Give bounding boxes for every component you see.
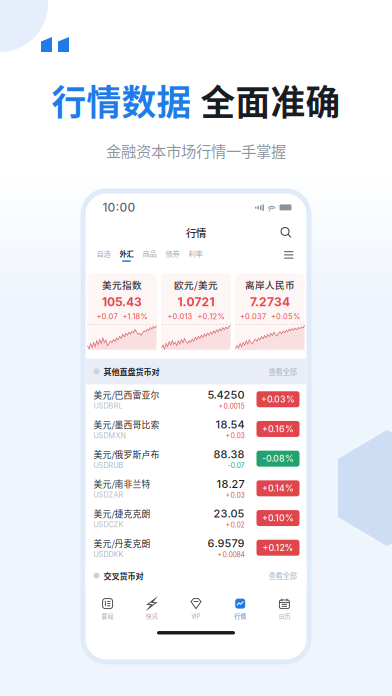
staticText: 行情数据 xyxy=(51,75,191,125)
staticText: +0.03 xyxy=(225,432,244,440)
staticText: 要闻 xyxy=(102,612,114,620)
staticText: 1.0721 xyxy=(177,295,214,309)
staticText: 5.4250 xyxy=(207,388,244,401)
staticText: 23.05 xyxy=(213,507,244,520)
staticText: +0.10% xyxy=(262,513,294,523)
button[interactable]: 美元指数 xyxy=(87,273,156,349)
staticText: USDRUB xyxy=(93,461,123,470)
staticText: -0.07 xyxy=(227,461,244,470)
staticText: 离岸人民币 xyxy=(245,278,295,292)
staticText: +0.12% xyxy=(262,542,293,553)
staticText: USDZAR xyxy=(93,491,123,499)
staticText: 利率 xyxy=(188,248,202,258)
staticText: +0.12% xyxy=(197,312,224,321)
staticText: 自选 xyxy=(96,248,110,258)
button[interactable]: 美元/俄罗斯卢布 xyxy=(85,444,306,473)
staticText: USDDKK xyxy=(93,550,123,559)
staticText: 外汇 xyxy=(119,248,133,258)
staticText: -0.08% xyxy=(262,453,294,464)
button[interactable]: 债券 xyxy=(165,248,179,262)
staticText: 行情 xyxy=(186,225,206,240)
staticText: +0.16% xyxy=(262,424,294,434)
staticText: +0.02 xyxy=(225,521,244,529)
staticText: 美元/南非兰特 xyxy=(93,477,150,490)
staticText: +0.013 xyxy=(167,312,192,321)
staticText: +0.14% xyxy=(262,483,294,494)
staticText: 美元/捷克克朗 xyxy=(93,507,150,520)
staticText: 金融资本市场行情一手掌握 xyxy=(106,139,286,161)
button[interactable]: 快讯 xyxy=(130,599,174,620)
button[interactable]: 欧元/美元 xyxy=(161,273,230,349)
staticText: 18.27 xyxy=(216,477,244,490)
staticText: 美元/墨西哥比索 xyxy=(93,418,159,431)
staticText: 105.43 xyxy=(102,295,142,309)
staticText: +0.037 xyxy=(240,312,266,321)
staticText: +0.0084 xyxy=(217,550,244,559)
staticText: 查看全部 xyxy=(268,570,296,581)
button[interactable]: 搜索 xyxy=(276,223,295,242)
staticText: +0.07 xyxy=(96,312,117,321)
staticText: 7.2734 xyxy=(250,295,290,309)
staticText: 商品 xyxy=(142,248,156,258)
staticText: USDMXN xyxy=(93,431,125,440)
staticText: VIP xyxy=(191,612,200,620)
button[interactable]: 美元/巴西雷亚尔 xyxy=(85,384,306,414)
button[interactable]: 外汇 xyxy=(119,248,133,262)
staticText: +0.05% xyxy=(271,312,300,321)
staticText: 6.9579 xyxy=(207,537,244,550)
button[interactable]: 查看全部 xyxy=(266,364,298,379)
staticText: 其他直盘货币对 xyxy=(103,365,159,377)
staticText: 88.38 xyxy=(213,448,244,461)
staticText: 债券 xyxy=(165,248,179,258)
button[interactable]: 美元/南非兰特 xyxy=(85,473,306,503)
staticText: 全面准确 xyxy=(200,75,340,125)
staticText: +0.03 xyxy=(225,491,244,499)
button[interactable]: VIP xyxy=(174,599,218,620)
button[interactable]: 日历 xyxy=(262,599,306,620)
staticText: 10:00 xyxy=(102,200,135,215)
staticText: 交叉货币对 xyxy=(103,570,143,581)
staticText: 18.54 xyxy=(215,418,244,431)
staticText: 美元/俄罗斯卢布 xyxy=(93,448,159,460)
staticText: 美元/巴西雷亚尔 xyxy=(93,388,159,401)
button[interactable]: 行情 xyxy=(218,599,262,620)
staticText: 美元指数 xyxy=(102,278,142,292)
button[interactable]: 美元/捷克克朗 xyxy=(85,503,306,533)
staticText: +0.0015 xyxy=(218,402,244,410)
staticText: 日历 xyxy=(278,612,290,620)
button[interactable]: 查看全部 xyxy=(266,568,298,583)
staticText: 行情 xyxy=(234,612,246,620)
staticText: 查看全部 xyxy=(268,366,296,377)
button[interactable]: 自选 xyxy=(96,248,110,262)
button[interactable]: 要闻 xyxy=(85,599,130,620)
staticText: 快讯 xyxy=(146,612,158,620)
staticText: 欧元/美元 xyxy=(174,278,218,292)
staticText: 美元/丹麦克朗 xyxy=(93,537,150,549)
button[interactable]: 商品 xyxy=(142,248,156,262)
button[interactable]: 美元/墨西哥比索 xyxy=(85,414,306,444)
button[interactable]: 离岸人民币 xyxy=(235,273,304,349)
button[interactable]: 美元/丹麦克朗 xyxy=(85,533,306,563)
staticText: +0.03% xyxy=(261,394,295,404)
staticText: USDBRL xyxy=(93,401,122,410)
staticText: USDCZK xyxy=(93,520,123,529)
staticText: +1.18% xyxy=(122,312,147,321)
button[interactable]: 更多 xyxy=(280,247,297,263)
button[interactable]: 利率 xyxy=(188,248,202,262)
